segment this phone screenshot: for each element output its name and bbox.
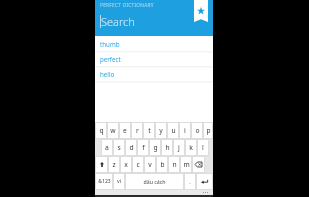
staticText: x — [124, 160, 128, 169]
button[interactable]: o — [192, 123, 202, 138]
staticText: u — [171, 126, 176, 135]
button[interactable]: k — [186, 140, 196, 155]
staticText: h — [165, 143, 170, 152]
button[interactable]: e — [120, 123, 130, 138]
staticText: t — [148, 126, 151, 135]
staticText: e — [123, 126, 127, 135]
button[interactable]: Shift — [96, 157, 107, 172]
button[interactable]: perfect — [95, 51, 213, 66]
staticText: f — [142, 143, 145, 152]
button[interactable]: vi — [114, 174, 124, 189]
button[interactable]: s — [114, 140, 124, 155]
staticText: s — [117, 143, 121, 152]
button[interactable]: j — [174, 140, 184, 155]
button[interactable]: . — [185, 174, 195, 189]
button[interactable]: Favorites — [194, 0, 208, 22]
button[interactable]: &123 — [96, 174, 112, 189]
staticText: i — [184, 126, 186, 135]
staticText: vi — [117, 178, 121, 185]
staticText: . — [189, 178, 191, 185]
button[interactable]: n — [169, 157, 179, 172]
staticText: PERFECT DICTIONARY — [100, 2, 154, 9]
button[interactable]: p — [204, 123, 212, 138]
staticText: z — [112, 160, 116, 169]
button[interactable]: i — [180, 123, 190, 138]
staticText: m — [183, 160, 190, 169]
staticText: d — [129, 143, 134, 152]
staticText: c — [136, 160, 140, 169]
button[interactable]: f — [138, 140, 148, 155]
staticText: j — [178, 143, 180, 152]
button[interactable]: dấu cách — [126, 174, 183, 189]
staticText: y — [159, 126, 163, 135]
staticText: b — [160, 160, 165, 169]
staticText: &123 — [98, 178, 111, 185]
button[interactable]: t — [144, 123, 154, 138]
staticText: v — [148, 160, 152, 169]
staticText: k — [189, 143, 193, 152]
staticText: p — [206, 126, 211, 135]
staticText: r — [136, 126, 139, 135]
staticText: perfect — [100, 55, 121, 63]
staticText: l — [202, 143, 204, 152]
button[interactable]: b — [157, 157, 167, 172]
button[interactable]: c — [133, 157, 143, 172]
button[interactable]: hello — [95, 66, 213, 81]
button[interactable]: y — [156, 123, 166, 138]
button[interactable]: d — [126, 140, 136, 155]
staticText: dấu cách — [143, 178, 166, 185]
button[interactable]: l — [198, 140, 208, 155]
staticText: o — [195, 126, 200, 135]
button[interactable]: Backspace — [193, 157, 204, 172]
button[interactable]: u — [168, 123, 178, 138]
button[interactable]: r — [132, 123, 142, 138]
staticText: a — [105, 143, 109, 152]
button[interactable]: a — [102, 140, 112, 155]
button[interactable]: thumb — [95, 36, 213, 51]
button[interactable]: g — [150, 140, 160, 155]
button[interactable]: v — [145, 157, 155, 172]
button[interactable]: q — [96, 123, 106, 138]
staticText: q — [99, 126, 104, 135]
button[interactable]: Enter — [197, 174, 212, 189]
button[interactable]: m — [181, 157, 191, 172]
staticText: g — [153, 143, 158, 152]
staticText: Search — [101, 14, 135, 29]
button[interactable]: x — [121, 157, 131, 172]
staticText: w — [110, 126, 116, 135]
staticText: hello — [100, 70, 115, 78]
button[interactable]: z — [109, 157, 119, 172]
button[interactable]: w — [108, 123, 118, 138]
staticText: thumb — [100, 40, 120, 48]
staticText: n — [172, 160, 177, 169]
button[interactable]: h — [162, 140, 172, 155]
